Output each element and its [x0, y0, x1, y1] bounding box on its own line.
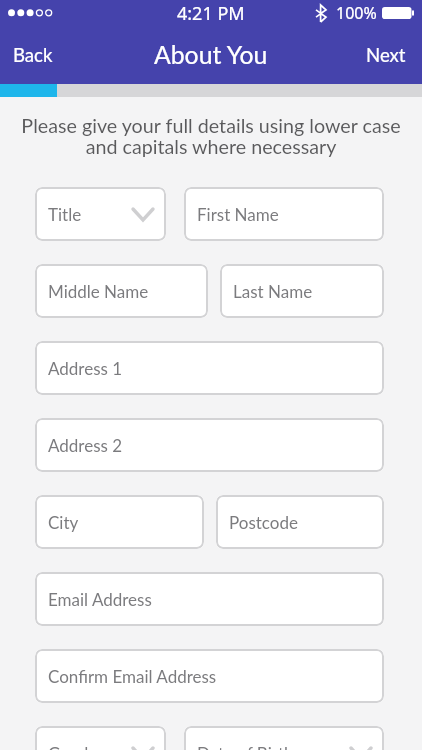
- button[interactable]: City: [35, 495, 204, 549]
- button[interactable]: Middle Name: [35, 264, 208, 318]
- staticText: Last Name: [233, 281, 313, 301]
- button[interactable]: Address 1: [35, 341, 384, 395]
- staticText: Address 1: [48, 358, 123, 378]
- staticText: First Name: [197, 204, 279, 224]
- button[interactable]: Confirm Email Address: [35, 649, 384, 703]
- button[interactable]: Back: [0, 34, 66, 76]
- button[interactable]: Address 2: [35, 418, 384, 472]
- staticText: 100%: [336, 2, 377, 24]
- button[interactable]: First Name: [184, 187, 384, 241]
- staticText: Postcode: [229, 512, 298, 532]
- staticText: About You: [154, 40, 268, 70]
- staticText: Date of Birth: [197, 743, 294, 750]
- button[interactable]: Postcode: [216, 495, 384, 549]
- staticText: Address 2: [48, 435, 123, 455]
- staticText: City: [48, 512, 79, 532]
- staticText: Middle Name: [48, 281, 149, 301]
- button[interactable]: Date of Birth: [184, 726, 384, 750]
- staticText: Title: [48, 204, 82, 224]
- staticText: Confirm Email Address: [48, 666, 217, 686]
- staticText: Email Address: [48, 589, 152, 609]
- staticText: Please give your full details using lowe…: [0, 114, 422, 158]
- staticText: Next: [366, 44, 406, 66]
- button[interactable]: Last Name: [220, 264, 384, 318]
- staticText: Gender: [48, 743, 104, 750]
- other: Open Title list: [133, 209, 153, 220]
- button[interactable]: Email Address: [35, 572, 384, 626]
- staticText: 4:21 PM: [177, 1, 245, 26]
- button[interactable]: Title: [35, 187, 166, 241]
- button[interactable]: Next: [352, 34, 422, 76]
- staticText: Back: [13, 44, 53, 66]
- other: Open Gender list: [133, 748, 153, 750]
- button[interactable]: Gender: [35, 726, 166, 750]
- other: Open Date of Birth list: [351, 748, 371, 750]
